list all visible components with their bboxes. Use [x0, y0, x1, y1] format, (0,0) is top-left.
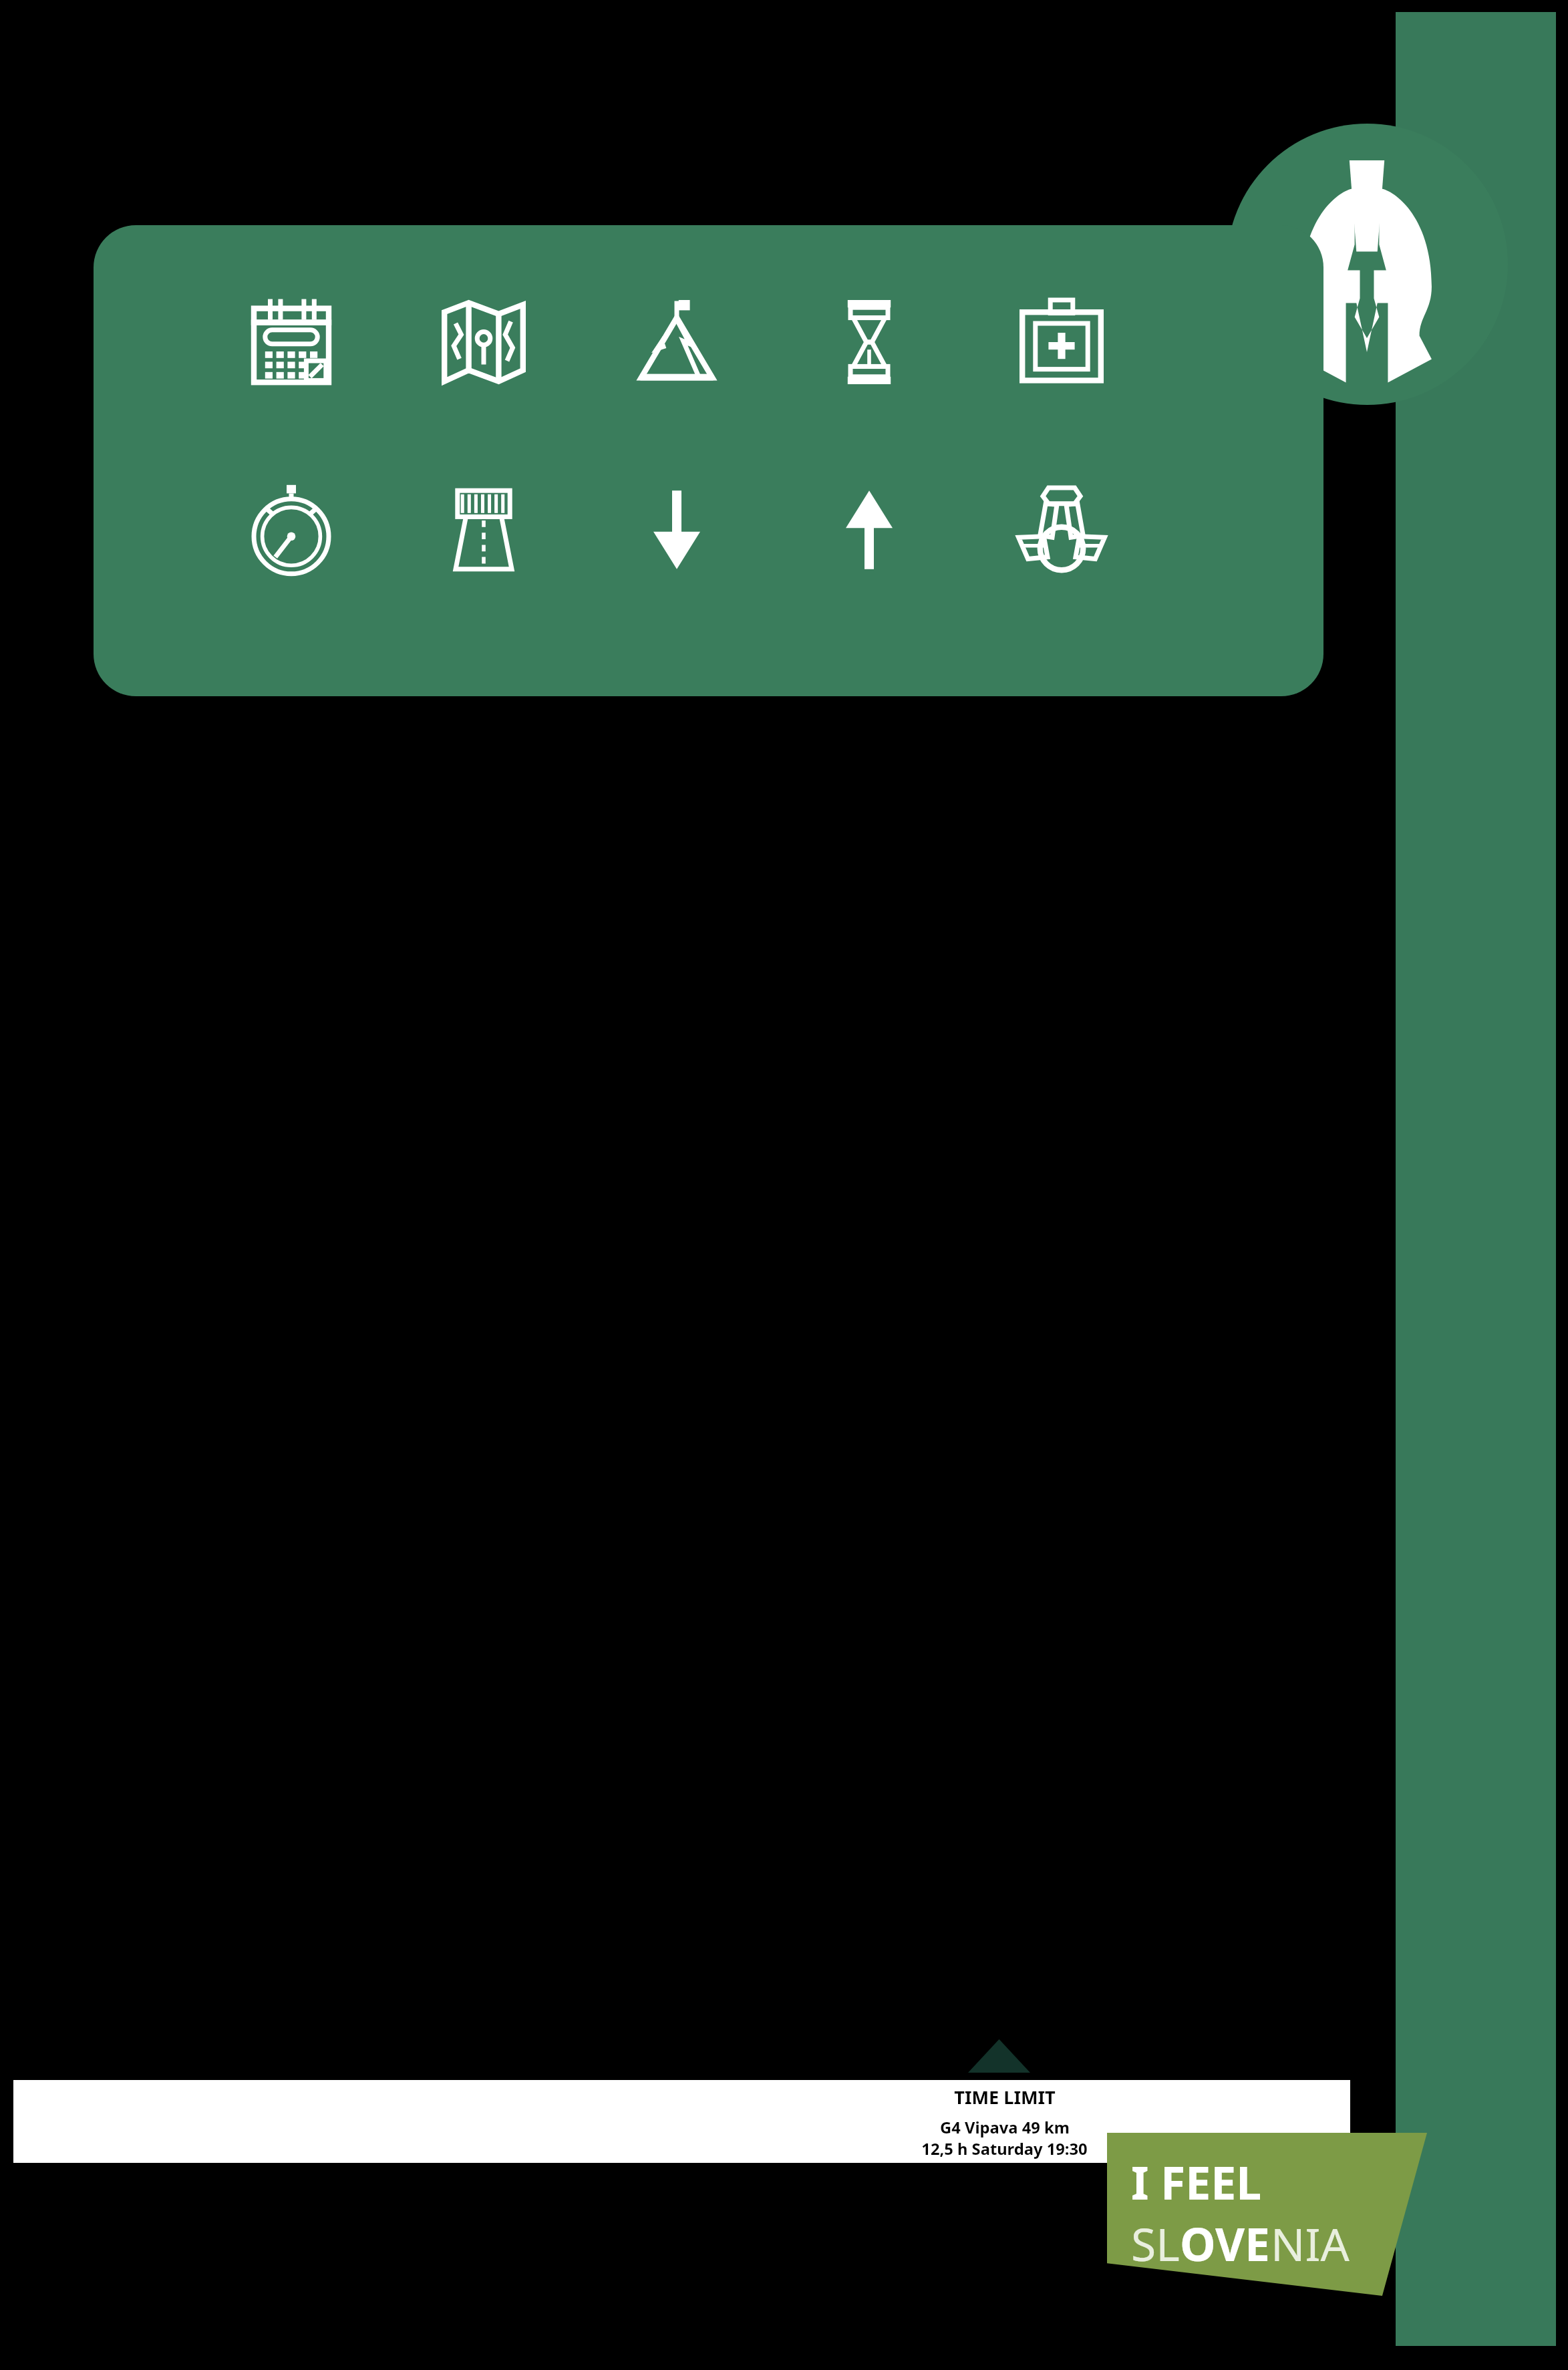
button[interactable]: Date [94, 225, 1323, 696]
button[interactable]: First aid [1003, 283, 1120, 400]
button[interactable]: I feel Slovenia [1107, 2133, 1427, 2296]
staticText: OVE [1180, 2212, 1271, 2274]
button[interactable]: Summit [618, 283, 735, 400]
button[interactable]: Date [232, 283, 349, 400]
button[interactable]: Medal [1003, 471, 1120, 588]
button[interactable]: Duration [810, 283, 927, 400]
button[interactable]: Time [232, 471, 349, 588]
staticText: I FEEL [1131, 2151, 1262, 2212]
button[interactable]: Route [425, 471, 542, 588]
other: Spartan helmet logo [1279, 151, 1454, 385]
staticText: G4 Vipava 49 km [940, 2117, 1070, 2138]
button[interactable]: Map [425, 283, 542, 400]
staticText: NIA [1271, 2212, 1350, 2274]
button[interactable]: Descent [618, 471, 735, 588]
staticText: SL [1131, 2212, 1180, 2274]
button[interactable]: TIME LIMIT [13, 2080, 1350, 2163]
button[interactable]: Ascent [810, 471, 927, 588]
staticText: 12,5 h Saturday 19:30 [921, 2138, 1088, 2160]
staticText: TIME LIMIT [954, 2085, 1056, 2109]
